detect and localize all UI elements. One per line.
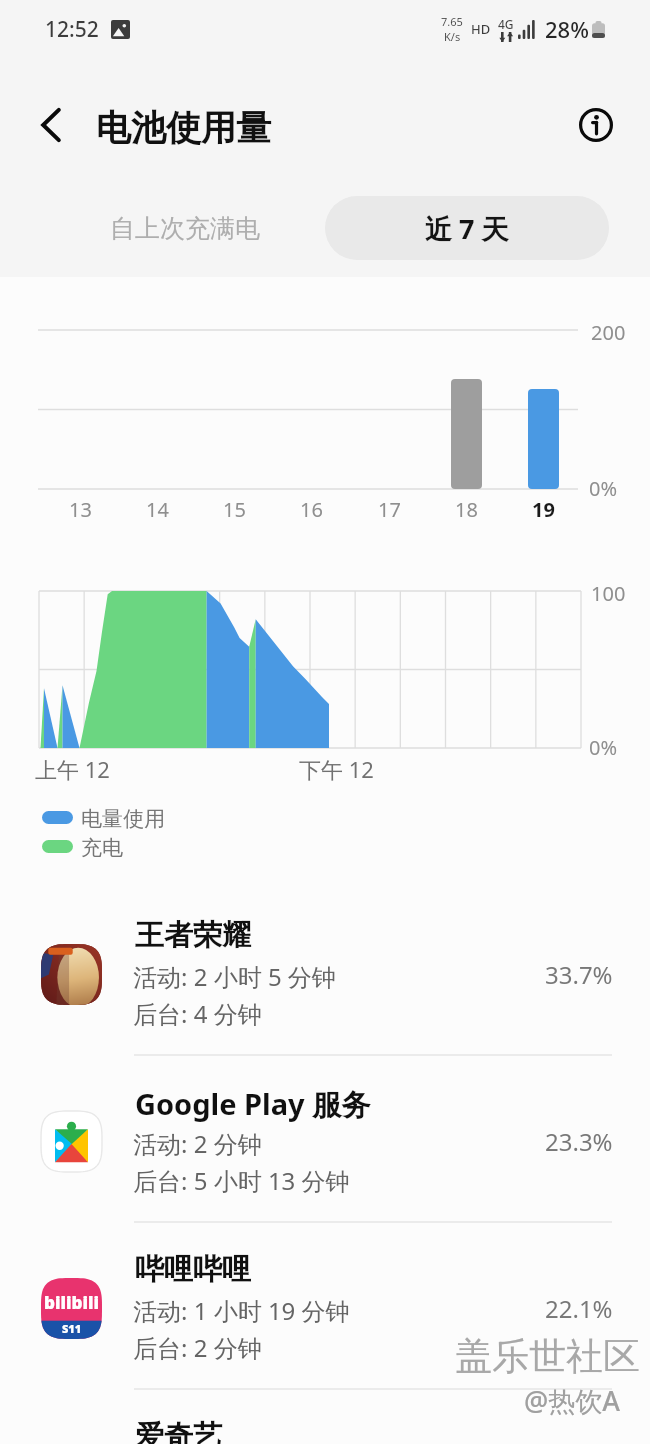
staticText: 后台: 5 小时 13 分钟 [133,1164,350,1197]
staticText: 后台: 4 分钟 [133,997,262,1030]
staticText: HD [471,20,491,38]
staticText: 19 [532,496,555,523]
staticText: 100 [591,580,626,607]
button[interactable]: 近 7 天 [325,196,609,260]
staticText: 0% [589,734,618,761]
staticText: 28% [545,14,589,44]
staticText: 15 [223,496,246,523]
staticText: 近 7 天 [425,210,509,247]
button[interactable]: Google Play 服务 [0,1057,650,1224]
staticText: 哔哩哔哩 [135,1251,251,1288]
staticText: 33.7% [545,958,613,991]
staticText: 14 [146,496,169,523]
staticText: 充电 [81,835,123,861]
staticText: 自上次充满电 [110,213,260,244]
staticText: @热饮A [524,1382,620,1419]
button[interactable]: 爱奇艺 [0,1391,650,1444]
staticText: 18 [455,496,478,523]
staticText: 上午 12 [35,754,110,784]
staticText: 12:52 [45,15,99,44]
staticText: 王者荣耀 [135,917,251,954]
staticText: 活动: 2 分钟 [133,1127,262,1160]
staticText: 后台: 2 分钟 [133,1331,262,1364]
button[interactable]: Information [569,98,623,152]
staticText: K/s [444,29,461,44]
staticText: 7.65 [441,14,463,29]
button[interactable]: bilibili [0,1224,650,1391]
staticText: 13 [69,496,92,523]
button[interactable]: Back [22,96,80,154]
staticText: 23.3% [545,1125,613,1158]
staticText: 活动: 1 小时 19 分钟 [133,1294,350,1327]
staticText: 22.1% [545,1292,613,1325]
staticText: Google Play 服务 [135,1084,371,1124]
staticText: 16 [300,496,323,523]
staticText: 4G [498,16,514,32]
staticText: 200 [591,319,626,346]
button[interactable]: 自上次充满电 [96,196,274,260]
staticText: 电池使用量 [96,106,271,150]
staticText: 0% [589,475,618,502]
staticText: 电量使用 [81,806,165,832]
staticText: 活动: 2 小时 5 分钟 [133,960,336,993]
staticText: 盖乐世社区 [455,1333,640,1380]
staticText: 下午 12 [299,754,374,784]
staticText: S11 [62,1321,82,1336]
button[interactable]: 王者荣耀 [0,890,650,1057]
staticText: 17 [378,496,401,523]
staticText: bilibili [44,1291,99,1314]
staticText: 爱奇艺 [135,1418,222,1444]
